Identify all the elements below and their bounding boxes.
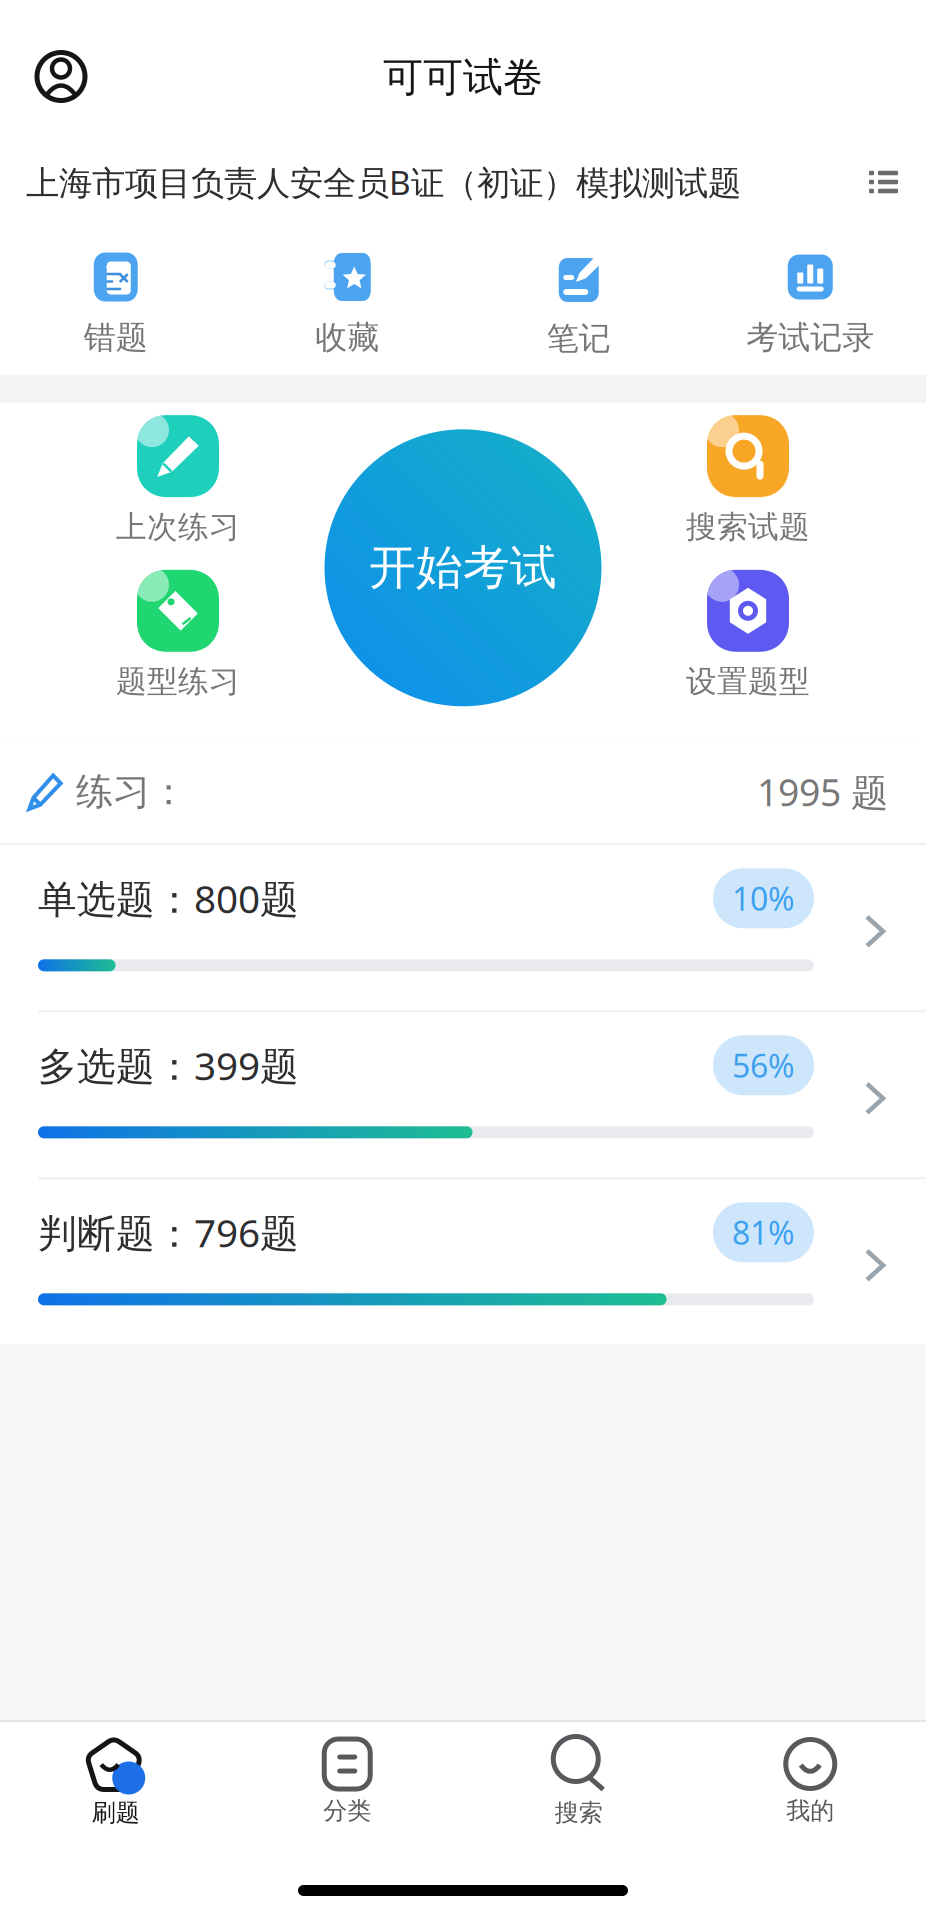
staticText: 题型练习 xyxy=(116,663,240,700)
staticText: 单选题：800题 xyxy=(38,873,299,924)
staticText: 上次练习 xyxy=(116,508,240,546)
button[interactable]: 搜索 xyxy=(463,1736,694,1827)
staticText: 56% xyxy=(732,1044,795,1087)
button[interactable]: 题型练习 xyxy=(116,570,240,700)
button[interactable]: 分类 xyxy=(231,1738,463,1825)
button[interactable]: Profile xyxy=(35,50,87,102)
staticText: 10% xyxy=(732,877,795,920)
staticText: 我的 xyxy=(786,1796,834,1825)
staticText: 考试记录 xyxy=(746,318,874,357)
staticText: 分类 xyxy=(323,1796,371,1825)
button[interactable]: 搜索试题 xyxy=(686,415,810,546)
staticText: 搜索 xyxy=(555,1798,603,1827)
button[interactable]: 上次练习 xyxy=(116,415,240,546)
button[interactable]: Question list xyxy=(869,166,898,188)
staticText: 可可试卷 xyxy=(383,53,543,102)
button[interactable]: 开始考试 xyxy=(324,429,601,706)
staticText: 练习： xyxy=(76,769,187,815)
staticText: 搜索试题 xyxy=(686,508,810,546)
staticText: 判断题：796题 xyxy=(38,1207,299,1258)
staticText: 收藏 xyxy=(315,318,379,357)
staticText: 上海市项目负责人安全员B证（初证）模拟测试题 xyxy=(26,160,741,204)
staticText: 81% xyxy=(732,1211,795,1254)
staticText: 笔记 xyxy=(547,319,611,358)
button[interactable]: 笔记 xyxy=(463,250,694,358)
button[interactable]: 我的 xyxy=(694,1738,926,1825)
button[interactable]: 单选题：800题 xyxy=(0,845,926,1010)
staticText: 多选题：399题 xyxy=(38,1040,299,1091)
button[interactable]: 判断题：796题 xyxy=(0,1179,926,1344)
button[interactable]: 错题 xyxy=(0,251,231,357)
staticText: 刷题 xyxy=(92,1798,140,1827)
button[interactable]: 考试记录 xyxy=(694,251,926,357)
staticText: 设置题型 xyxy=(686,663,810,700)
staticText: 开始考试 xyxy=(369,539,557,596)
staticText: 错题 xyxy=(84,318,148,357)
staticText: 1995 题 xyxy=(757,767,888,817)
button[interactable]: 多选题：399题 xyxy=(0,1012,926,1177)
button[interactable]: 刷题 xyxy=(0,1736,231,1827)
button[interactable]: 收藏 xyxy=(231,251,463,357)
button[interactable]: 设置题型 xyxy=(686,570,810,700)
